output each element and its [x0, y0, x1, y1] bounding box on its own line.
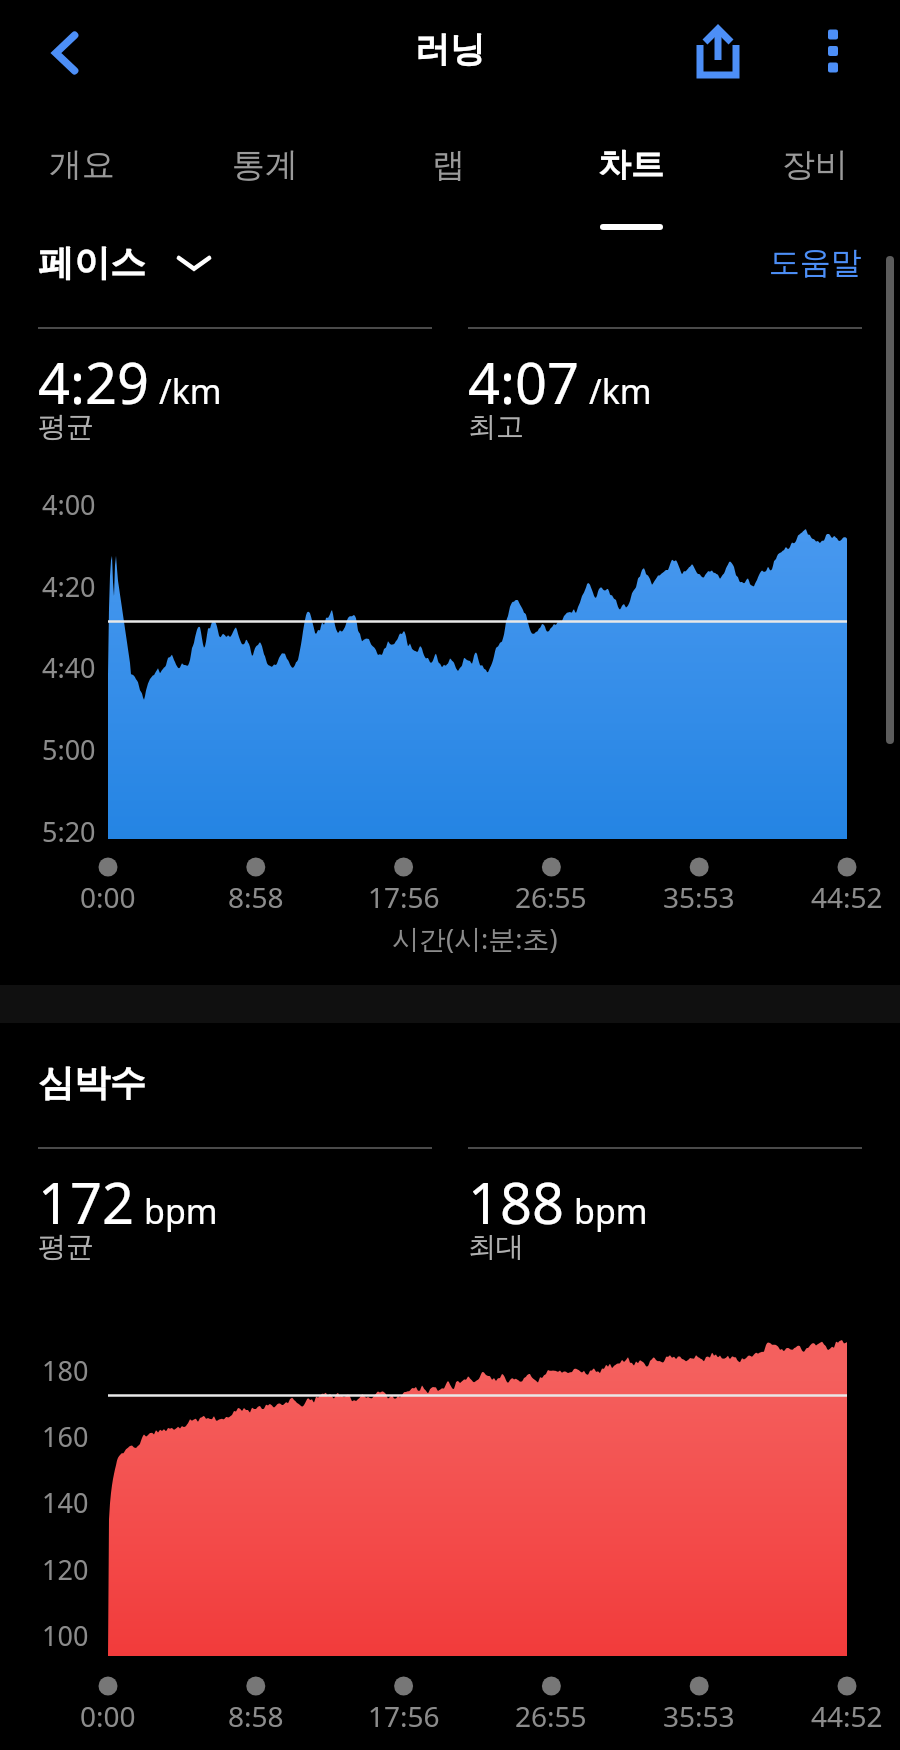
- staticText: 100: [42, 1617, 89, 1654]
- staticText: 심박수: [38, 1060, 146, 1105]
- staticText: 26:55: [515, 1697, 587, 1735]
- staticText: 35:53: [663, 878, 735, 916]
- staticText: 시간(시:분:초): [392, 920, 558, 957]
- staticText: 188: [468, 1164, 565, 1240]
- staticText: 0:00: [80, 1697, 136, 1735]
- staticText: 5:20: [42, 813, 96, 850]
- staticText: 페이스: [38, 240, 146, 285]
- staticText: 최고: [468, 409, 524, 444]
- staticText: 8:58: [228, 1697, 284, 1735]
- staticText: 26:55: [515, 878, 587, 916]
- button[interactable]: More options: [790, 8, 876, 94]
- staticText: 17:56: [368, 878, 440, 916]
- staticText: 4:07: [468, 344, 580, 420]
- button[interactable]: 페이스: [38, 240, 212, 285]
- staticText: 차트: [598, 144, 664, 186]
- staticText: 120: [42, 1551, 89, 1588]
- staticText: /km: [159, 368, 222, 414]
- staticText: 44:52: [811, 878, 883, 916]
- staticText: 랩: [432, 144, 465, 186]
- staticText: 180: [42, 1352, 89, 1389]
- staticText: 러닝: [415, 27, 485, 71]
- staticText: 4:00: [42, 486, 96, 523]
- button[interactable]: Share: [675, 11, 761, 97]
- staticText: /km: [589, 368, 652, 414]
- staticText: bpm: [144, 1188, 218, 1234]
- button[interactable]: 개요: [0, 118, 173, 238]
- button[interactable]: 통계: [174, 118, 356, 238]
- button[interactable]: Back: [22, 10, 108, 96]
- staticText: 140: [42, 1484, 89, 1521]
- staticText: 평균: [38, 1229, 94, 1264]
- staticText: 개요: [49, 144, 115, 186]
- staticText: 장비: [782, 144, 848, 186]
- staticText: 44:52: [811, 1697, 883, 1735]
- staticText: 0:00: [80, 878, 136, 916]
- staticText: 평균: [38, 409, 94, 444]
- staticText: 4:29: [38, 344, 150, 420]
- staticText: 통계: [232, 144, 298, 186]
- staticText: 4:40: [42, 649, 96, 686]
- staticText: 8:58: [228, 878, 284, 916]
- staticText: 17:56: [368, 1697, 440, 1735]
- button[interactable]: 도움말: [769, 243, 862, 282]
- button[interactable]: 장비: [724, 118, 900, 238]
- staticText: 5:00: [42, 731, 96, 768]
- staticText: 최대: [468, 1229, 524, 1264]
- staticText: bpm: [574, 1188, 648, 1234]
- staticText: 4:20: [42, 568, 96, 605]
- staticText: 160: [42, 1418, 89, 1455]
- staticText: 35:53: [663, 1697, 735, 1735]
- staticText: 172: [38, 1164, 135, 1240]
- button[interactable]: 랩: [357, 118, 539, 238]
- button[interactable]: 차트: [540, 118, 722, 238]
